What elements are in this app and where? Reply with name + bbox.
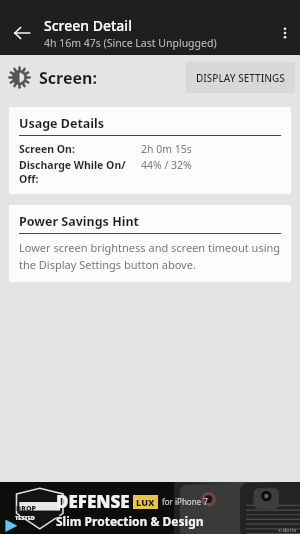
- staticText: DISPLAY SETTINGS: [196, 71, 285, 85]
- staticText: 44% / 32%: [141, 158, 192, 172]
- staticText: Power Savings Hint: [19, 213, 139, 230]
- staticText: Lower screen brightness and screen timeo…: [19, 240, 281, 255]
- staticText: Slim Protection & Design: [56, 513, 204, 529]
- staticText: 2h 0m 15s: [141, 142, 192, 156]
- staticText: Screen:: [39, 67, 97, 89]
- staticText: Discharge While On/Off:: [19, 158, 141, 186]
- button[interactable]: Power Savings Hint: [9, 205, 291, 282]
- staticText: DEFENSE: [56, 490, 130, 513]
- button[interactable]: More options: [270, 10, 300, 55]
- staticText: Usage Details: [19, 115, 105, 132]
- staticText: Screen On:: [19, 142, 75, 156]
- staticText: TESTED: [15, 514, 35, 521]
- staticText: x-doria: [278, 526, 297, 533]
- staticText: for iPhone 7: [162, 496, 208, 507]
- staticText: DROP: [16, 504, 36, 514]
- button[interactable]: DISPLAY SETTINGS: [186, 62, 295, 93]
- staticText: the Display Settings button above.: [19, 257, 196, 272]
- button[interactable]: Advertisement: [0, 482, 300, 534]
- button[interactable]: Usage Details: [9, 107, 291, 194]
- staticText: Screen Detail: [44, 16, 132, 35]
- staticText: 4h 16m 47s (Since Last Unplugged): [44, 36, 217, 50]
- button[interactable]: Back: [0, 10, 44, 55]
- staticText: LUX: [136, 496, 155, 508]
